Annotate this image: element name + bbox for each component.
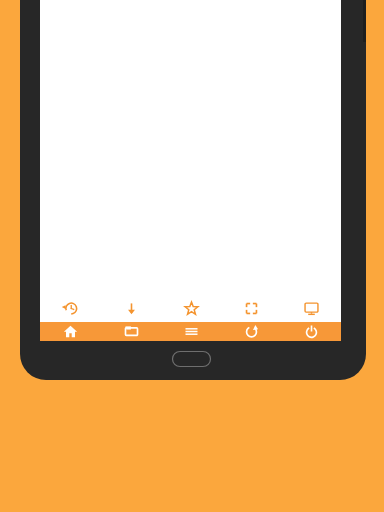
button[interactable]: Desktop mode xyxy=(281,295,341,322)
button[interactable]: Fullscreen xyxy=(221,295,281,322)
button[interactable]: Power xyxy=(281,322,341,341)
button[interactable]: Reload xyxy=(221,322,281,341)
button[interactable]: Home xyxy=(40,322,101,341)
button[interactable]: Download xyxy=(101,295,161,322)
button[interactable]: Bookmark xyxy=(161,295,221,322)
button[interactable]: Home button xyxy=(172,351,211,367)
button[interactable]: History xyxy=(40,295,101,322)
button[interactable]: Folders xyxy=(101,322,161,341)
button[interactable]: Menu xyxy=(161,322,221,341)
